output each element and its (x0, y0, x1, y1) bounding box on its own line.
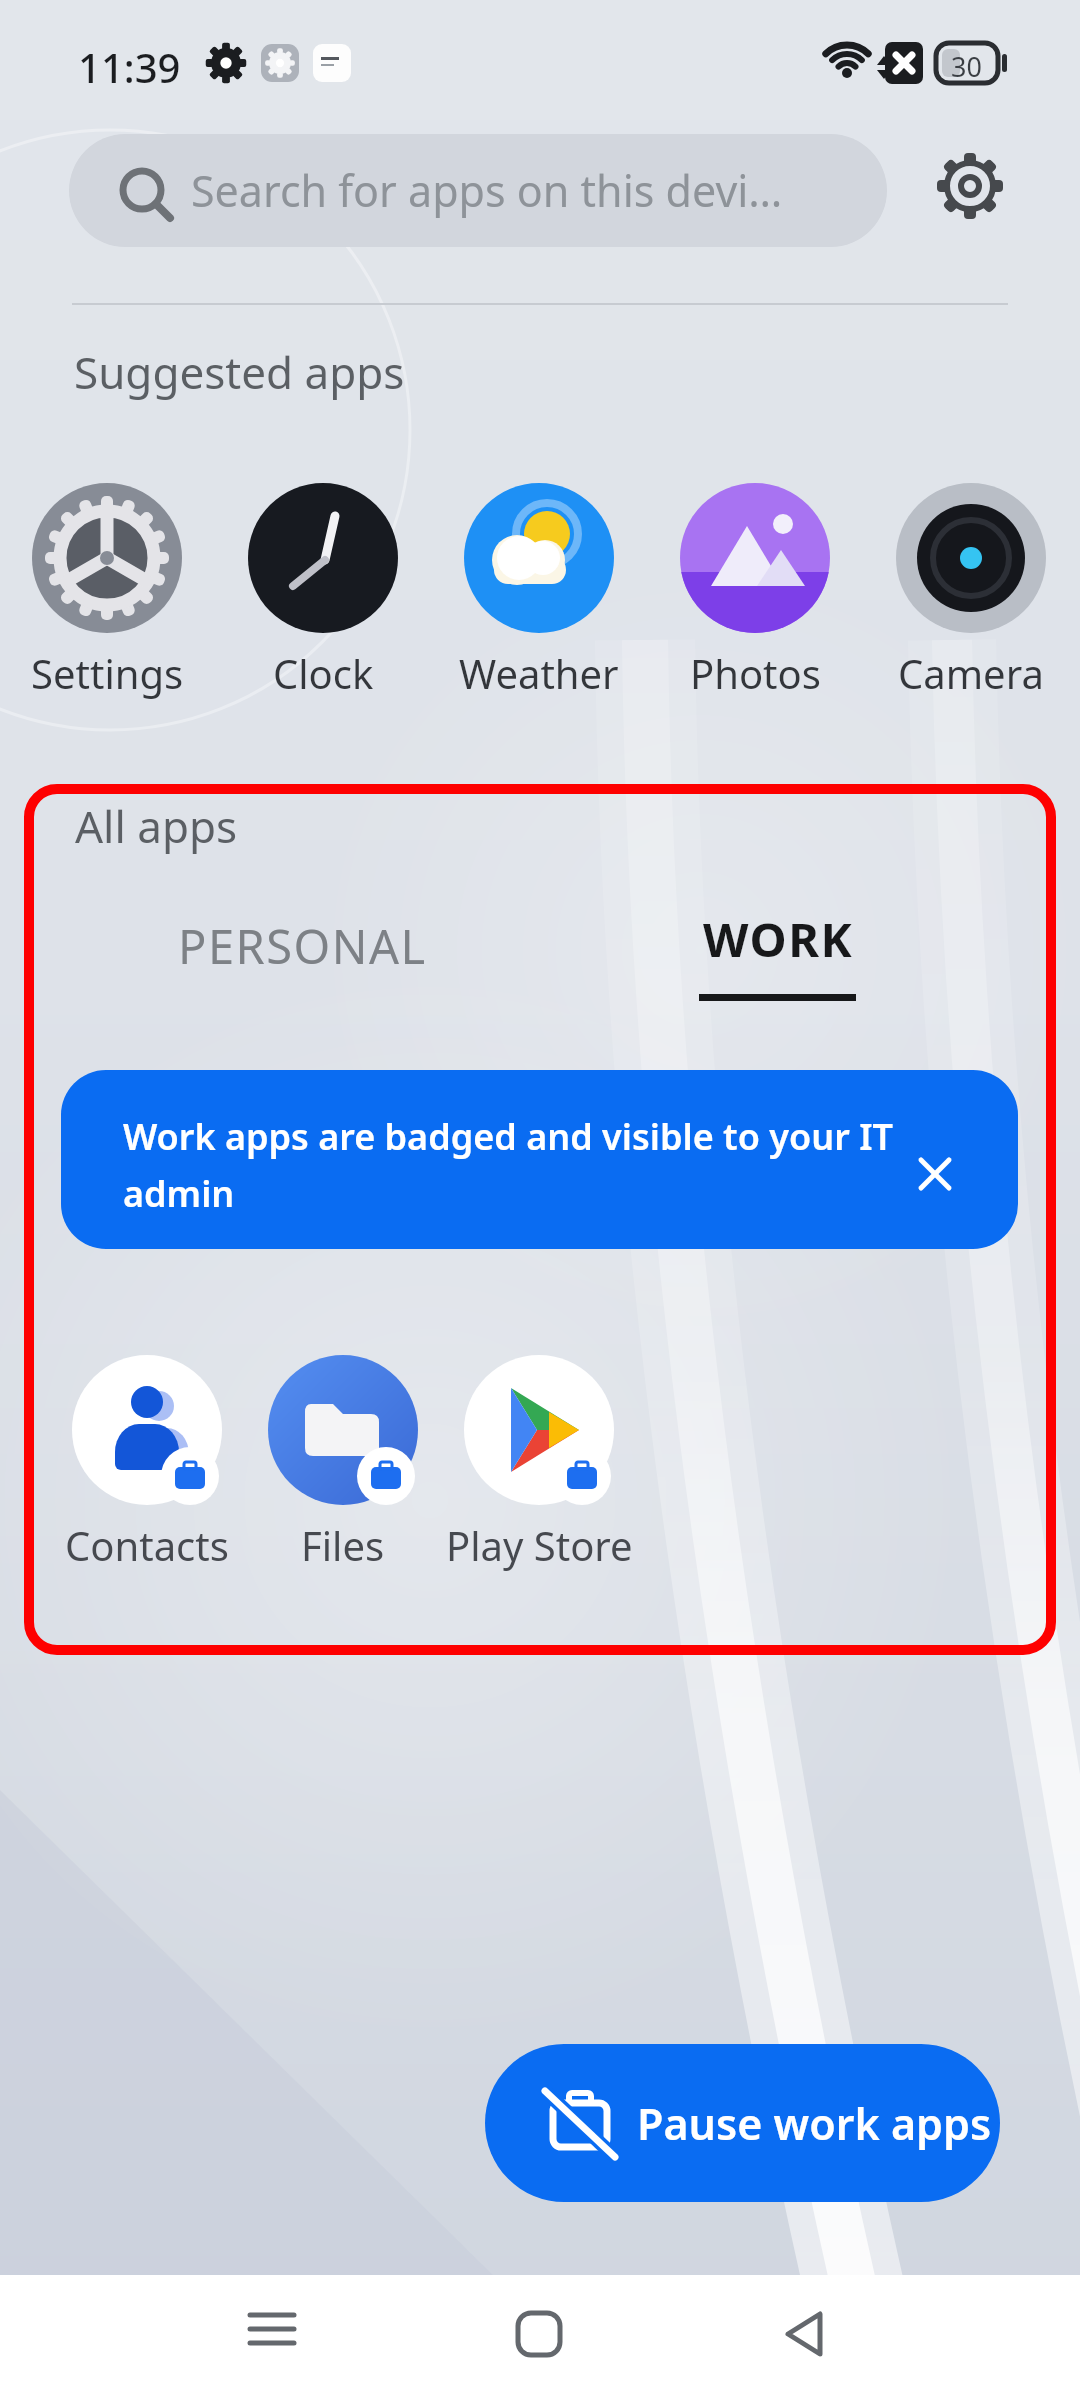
staticText: Settings (31, 646, 184, 700)
staticText: Contacts (65, 1518, 229, 1572)
button[interactable]: Weather (431, 480, 647, 700)
button[interactable]: Contacts (39, 1352, 255, 1572)
staticText: Search for apps on this devi… (191, 161, 783, 220)
button[interactable] (928, 144, 1012, 228)
button[interactable] (489, 2284, 589, 2384)
button[interactable]: Search for apps on this devi… (69, 134, 887, 247)
staticText: Work apps are badged and visible to your… (123, 1112, 893, 1218)
button[interactable] (222, 2284, 322, 2384)
button[interactable]: Photos (647, 480, 863, 700)
staticText: Clock (273, 646, 374, 700)
button[interactable]: Settings (0, 480, 215, 700)
button[interactable]: PERSONAL (150, 900, 454, 992)
staticText: 30 (951, 48, 982, 85)
staticText: All apps (75, 796, 238, 856)
staticText: Camera (898, 646, 1044, 700)
staticText: WORK (703, 907, 854, 971)
staticText: PERSONAL (178, 914, 427, 978)
button[interactable] (756, 2284, 856, 2384)
button[interactable]: Files (235, 1352, 451, 1572)
button[interactable]: Clock (215, 480, 431, 700)
staticText: Pause work apps (637, 2094, 992, 2153)
button[interactable]: Play Store (431, 1352, 647, 1572)
staticText: 11:39 (78, 40, 181, 94)
staticText: Photos (690, 646, 821, 700)
staticText: Play Store (446, 1518, 633, 1572)
button[interactable]: Camera (863, 480, 1079, 700)
button[interactable]: WORK (660, 893, 896, 985)
staticText: Weather (459, 646, 619, 700)
staticText: Files (301, 1518, 385, 1572)
button[interactable] (905, 1144, 965, 1204)
button[interactable]: Pause work apps (485, 2044, 1000, 2202)
staticText: Suggested apps (74, 342, 405, 402)
